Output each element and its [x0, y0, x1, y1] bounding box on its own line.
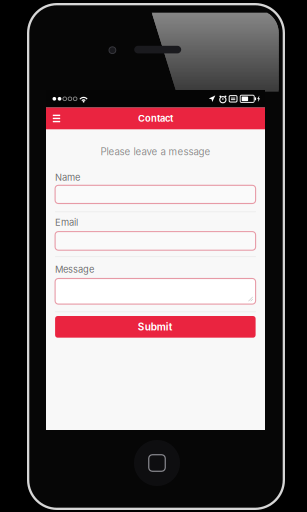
staticText: Submit [138, 321, 173, 333]
staticText: Contact [138, 113, 173, 124]
staticText: Email [55, 217, 78, 228]
button[interactable]: Submit [55, 316, 256, 338]
staticText: Please leave a message [100, 146, 210, 158]
button[interactable]: Menu [46, 108, 67, 129]
staticText: Message [55, 264, 94, 275]
staticText: Name [55, 172, 80, 183]
